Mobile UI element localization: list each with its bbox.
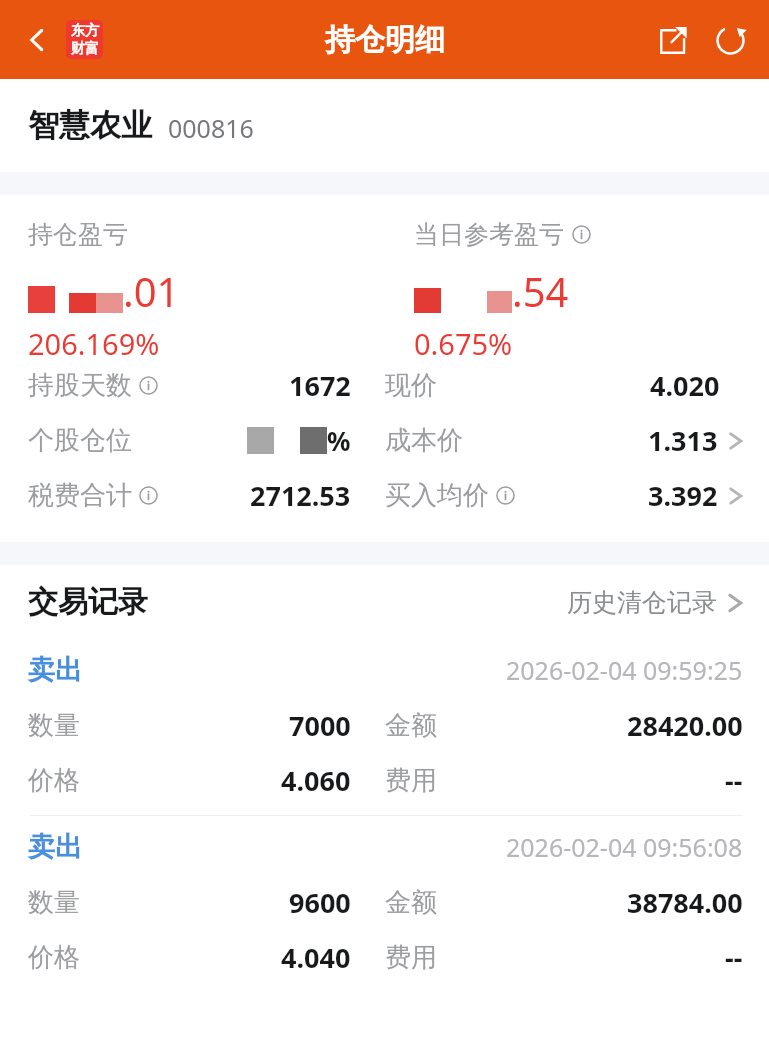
staticText: 成本价	[385, 424, 463, 457]
staticText: 持股天数	[28, 369, 132, 402]
staticText: 持仓明细	[325, 21, 445, 59]
staticText: 1672	[289, 367, 351, 404]
staticText: 数量	[28, 709, 80, 742]
staticText: 东方	[71, 22, 99, 40]
staticText: 9600	[289, 884, 351, 921]
button[interactable]: 买入均价	[385, 477, 743, 514]
staticText: 2026-02-04 09:56:08	[506, 830, 743, 864]
staticText: 财富	[71, 40, 99, 58]
staticText: 金额	[385, 886, 437, 919]
button[interactable]: 卖出	[0, 639, 769, 815]
button[interactable]: Refresh	[701, 11, 759, 69]
staticText: 价格	[28, 941, 80, 974]
staticText: .54	[512, 264, 569, 318]
button[interactable]: East Money	[66, 20, 103, 59]
staticText: 交易记录	[28, 583, 148, 621]
button[interactable]: 成本价	[385, 422, 743, 459]
staticText: 金额	[385, 709, 437, 742]
button[interactable]: 个股仓位	[28, 423, 385, 458]
staticText: 税费合计	[28, 479, 132, 512]
staticText: 卖出	[28, 830, 82, 864]
staticText: 个股仓位	[28, 424, 132, 457]
staticText: 000816	[168, 111, 254, 145]
staticText: 现价	[385, 369, 437, 402]
staticText: 买入均价	[385, 479, 489, 512]
staticText: 历史清仓记录	[567, 587, 717, 618]
staticText: 价格	[28, 764, 80, 797]
button[interactable]: Share	[643, 11, 701, 69]
staticText: 3.392	[648, 477, 718, 514]
staticText: 4.040	[281, 939, 351, 976]
button[interactable]: 税费合计	[28, 477, 385, 514]
staticText: 4.060	[281, 762, 351, 799]
staticText: 费用	[385, 941, 437, 974]
staticText: 28420.00	[627, 707, 743, 744]
staticText: 206.169%	[28, 324, 160, 363]
staticText: 2712.53	[250, 477, 351, 514]
staticText: .01	[123, 264, 180, 318]
staticText: 1.313	[648, 422, 718, 459]
staticText: --	[725, 762, 743, 799]
staticText: 费用	[385, 764, 437, 797]
staticText: 2026-02-04 09:59:25	[506, 653, 743, 687]
button[interactable]: Back	[12, 15, 62, 65]
staticText: 数量	[28, 886, 80, 919]
button[interactable]: 持股天数	[28, 367, 385, 404]
staticText: 卖出	[28, 653, 82, 687]
staticText: 38784.00	[627, 884, 743, 921]
button[interactable]: 卖出	[0, 816, 769, 992]
staticText: --	[725, 939, 743, 976]
staticText: 持仓盈亏	[28, 219, 128, 250]
staticText: 7000	[289, 707, 351, 744]
staticText: 智慧农业	[28, 106, 152, 145]
staticText: 4.020	[650, 367, 720, 404]
button[interactable]: 现价	[385, 367, 743, 404]
button[interactable]: 历史清仓记录	[567, 587, 743, 618]
staticText: %	[327, 423, 351, 458]
staticText: 当日参考盈亏	[414, 219, 564, 250]
staticText: 0.675%	[414, 324, 513, 363]
